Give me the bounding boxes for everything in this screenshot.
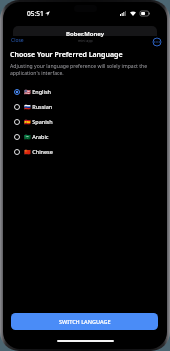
staticText: Adjusting your language preference will … xyxy=(10,63,161,77)
staticText: Close xyxy=(11,37,24,44)
staticText: 🇸🇦 Arabic xyxy=(24,133,49,140)
button[interactable]: 🇨🇳 Chinese xyxy=(10,144,161,159)
staticText: Choose Your Preferred Language xyxy=(10,50,123,60)
button[interactable]: 🇪🇸 Spanish xyxy=(10,114,161,129)
staticText: 🇨🇳 Chinese xyxy=(24,148,53,155)
staticText: SWITCH LANGUAGE xyxy=(59,318,111,325)
staticText: 🇪🇸 Spanish xyxy=(24,118,53,125)
staticText: 🇺🇸 English xyxy=(24,88,51,95)
button[interactable]: 🇺🇸 English xyxy=(10,84,161,99)
button[interactable]: Close xyxy=(7,34,28,47)
button[interactable]: 🇷🇺 Russian xyxy=(10,99,161,114)
staticText: 05:51 xyxy=(27,9,44,18)
staticText: Bober.Money xyxy=(66,30,105,38)
button[interactable]: SWITCH LANGUAGE xyxy=(11,313,158,330)
staticText: 🇷🇺 Russian xyxy=(24,103,53,110)
staticText: mini app xyxy=(78,38,93,43)
button[interactable]: 🇸🇦 Arabic xyxy=(10,129,161,144)
button[interactable]: More options xyxy=(150,35,164,49)
